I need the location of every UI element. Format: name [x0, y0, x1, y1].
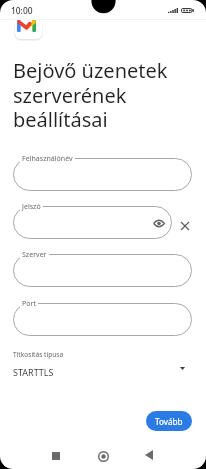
staticText: Szerver	[22, 249, 47, 259]
staticText: Port	[22, 298, 36, 308]
button[interactable]: Clear password	[177, 218, 193, 234]
staticText: Jelszó	[22, 201, 41, 211]
button[interactable]: Szerver	[13, 254, 192, 287]
button[interactable]: Tovább	[146, 411, 192, 431]
staticText: 10:00	[11, 5, 33, 16]
button[interactable]: Show password	[151, 215, 167, 231]
button[interactable]: Home	[91, 444, 115, 468]
staticText: Felhasználónév	[22, 153, 73, 163]
button[interactable]: Felhasználónév	[13, 158, 192, 191]
staticText: Bejövő üzenetek szerverének beállításai	[13, 57, 168, 133]
button[interactable]: Back	[137, 443, 161, 467]
staticText: Titkosítás típusa	[13, 350, 64, 359]
button[interactable]: Titkosítás típusa	[0, 348, 206, 380]
button[interactable]: Recent apps	[44, 444, 68, 468]
button[interactable]: Port	[13, 303, 192, 336]
staticText: Tovább	[155, 416, 183, 427]
staticText: STARTTLS	[13, 366, 54, 378]
button[interactable]: Jelszó	[13, 206, 172, 239]
